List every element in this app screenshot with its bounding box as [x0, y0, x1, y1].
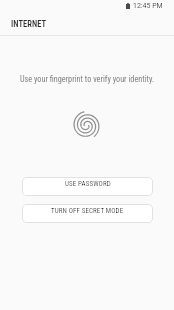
- staticText: USE PASSWORD: [65, 180, 111, 188]
- other: Fingerprint: [72, 111, 101, 140]
- staticText: INTERNET: [11, 19, 47, 29]
- staticText: Use your fingerprint to verify your iden…: [0, 74, 174, 84]
- staticText: TURN OFF SECRET MODE: [51, 207, 124, 215]
- staticText: 12:45 PM: [133, 2, 163, 10]
- button[interactable]: TURN OFF SECRET MODE: [22, 204, 153, 223]
- button[interactable]: USE PASSWORD: [22, 177, 153, 196]
